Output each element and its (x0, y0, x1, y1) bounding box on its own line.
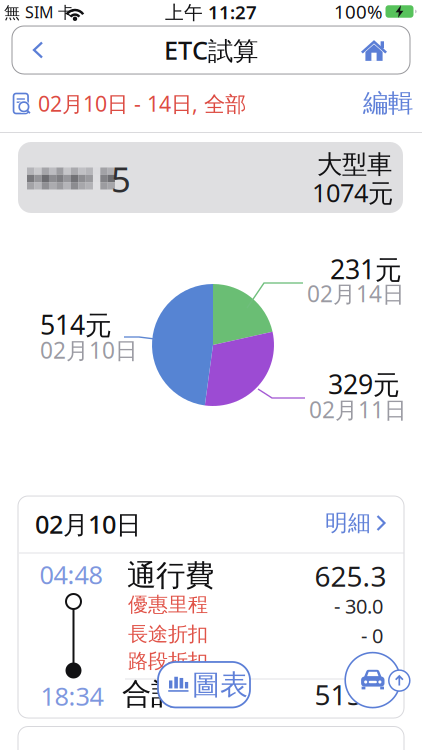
staticText: ETC試算 (164, 33, 258, 67)
staticText: 明細 (325, 509, 371, 537)
staticText: 329元 (328, 366, 400, 402)
staticText: 02月11日 (309, 394, 407, 424)
staticText: 圖表 (192, 668, 248, 702)
button[interactable]: 明細 (328, 511, 390, 535)
staticText: 625.3 (314, 557, 386, 595)
staticText: 5 (111, 156, 131, 202)
button[interactable]: 編輯 (359, 87, 417, 118)
staticText: - 0 (361, 648, 383, 675)
button[interactable]: Scroll to top (389, 670, 410, 691)
staticText: - 0 (361, 622, 383, 649)
staticText: 514元 (40, 307, 112, 342)
staticText: 合計 (122, 676, 180, 712)
staticText: 18:34 (40, 679, 103, 713)
staticText: - 30.0 (334, 593, 383, 619)
button[interactable]: 車輛 (18, 142, 403, 213)
staticText: 無 SIM 卡 (4, 1, 74, 23)
staticText: 編輯 (363, 87, 413, 118)
staticText: 231元 (330, 251, 402, 287)
staticText: 04:48 (39, 558, 102, 591)
staticText: 優惠里程 (128, 592, 208, 617)
staticText: 02月10日 (35, 507, 141, 541)
staticText: 大型車 (317, 149, 392, 180)
staticText: 通行費 (127, 557, 214, 593)
staticText: 515.3 (314, 676, 386, 713)
staticText: 02月10日 - 14日, 全部 (38, 89, 246, 118)
button[interactable]: 車輛 (345, 653, 400, 708)
staticText: 02月10日 (40, 335, 138, 365)
button[interactable]: Back (26, 37, 52, 63)
staticText: 路段折扣 (128, 649, 208, 673)
staticText: 長途折扣 (128, 622, 208, 646)
button[interactable]: Home (360, 39, 388, 61)
button[interactable]: 查詢區間 (9, 83, 339, 123)
staticText: 上午 11:27 (165, 0, 257, 24)
button[interactable]: 圖表 (158, 662, 250, 707)
staticText: 02月14日 (307, 278, 405, 308)
staticText: 1074元 (312, 176, 393, 209)
staticText: 100% (334, 0, 383, 24)
